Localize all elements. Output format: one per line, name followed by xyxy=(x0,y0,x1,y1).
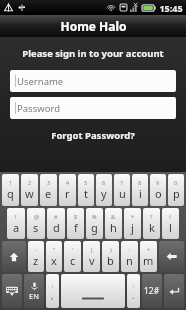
staticText: h xyxy=(110,220,117,235)
button[interactable]: # xyxy=(47,208,65,239)
button[interactable]: ? xyxy=(143,208,160,239)
button[interactable]: Username xyxy=(10,70,176,92)
button[interactable]: Keyboard settings xyxy=(2,274,22,308)
staticText: q xyxy=(7,186,14,201)
button[interactable]: Forgot Password? xyxy=(45,127,141,144)
button[interactable]: ! xyxy=(7,208,25,239)
staticText: * xyxy=(131,213,135,220)
button[interactable]: - xyxy=(28,241,44,272)
button[interactable]: Backspace xyxy=(159,241,184,272)
staticText: ( xyxy=(91,246,93,253)
button[interactable]: $ xyxy=(67,208,84,239)
staticText: y xyxy=(101,186,107,201)
button[interactable]: ) xyxy=(102,241,119,272)
button[interactable]: 8 xyxy=(132,174,148,206)
staticText: # xyxy=(54,213,58,220)
button[interactable]: Password xyxy=(10,97,176,119)
staticText: s xyxy=(33,220,39,235)
button[interactable]: Enter xyxy=(164,274,184,308)
staticText: a xyxy=(13,220,20,235)
staticText: x xyxy=(51,253,57,268)
button[interactable] xyxy=(61,274,125,308)
button[interactable]: ( xyxy=(83,241,100,272)
staticText: 5 xyxy=(84,179,88,186)
staticText: / xyxy=(169,213,172,220)
staticText: z xyxy=(33,253,39,268)
staticText: - xyxy=(35,246,37,253)
staticText: c xyxy=(70,253,76,268)
button[interactable]: " xyxy=(46,241,62,272)
staticText: Username xyxy=(17,75,64,88)
button[interactable]: ; xyxy=(46,274,59,308)
button[interactable]: + xyxy=(140,241,157,272)
staticText: i xyxy=(139,186,142,201)
staticText: 15:45 xyxy=(159,2,183,14)
staticText: w xyxy=(25,186,34,201)
button[interactable]: 4 xyxy=(59,174,76,206)
button[interactable]: Voice input EN xyxy=(24,274,44,308)
button[interactable]: 12# xyxy=(142,274,162,308)
staticText: t xyxy=(84,186,88,201)
staticText: 4 xyxy=(66,179,70,186)
button[interactable]: 2 xyxy=(21,174,38,206)
staticText: Forgot Password? xyxy=(51,129,135,142)
staticText: d xyxy=(53,220,60,235)
staticText: : xyxy=(129,246,131,253)
staticText: 12# xyxy=(144,285,160,297)
button[interactable]: 0 xyxy=(168,174,184,206)
staticText: ; xyxy=(52,282,54,289)
staticText: , xyxy=(51,289,54,301)
staticText: Home Halo xyxy=(60,18,127,34)
staticText: p xyxy=(173,186,180,201)
staticText: . xyxy=(132,289,135,301)
staticText: e xyxy=(45,186,52,201)
staticText: & xyxy=(111,213,116,220)
staticText: f xyxy=(74,220,78,235)
button[interactable]: / xyxy=(162,208,179,239)
staticText: " xyxy=(53,246,56,253)
button[interactable]: 1 xyxy=(2,174,19,206)
staticText: g xyxy=(91,220,98,235)
button[interactable]: @ xyxy=(27,208,45,239)
staticText: n xyxy=(126,253,133,268)
staticText: o xyxy=(155,186,162,201)
staticText: l xyxy=(169,220,172,235)
button[interactable]: 5 xyxy=(78,174,94,206)
button[interactable]: : xyxy=(127,274,140,308)
button[interactable]: % xyxy=(86,208,103,239)
staticText: 9 xyxy=(156,179,160,186)
staticText: ' xyxy=(72,246,74,253)
staticText: u xyxy=(119,186,126,201)
staticText: 6 xyxy=(102,179,106,186)
staticText: 1 xyxy=(9,179,13,186)
staticText: 3 xyxy=(47,179,51,186)
staticText: % xyxy=(92,213,97,220)
staticText: ? xyxy=(150,213,153,220)
button[interactable]: * xyxy=(124,208,141,239)
staticText: r xyxy=(65,186,70,201)
staticText: m xyxy=(143,253,154,268)
button[interactable]: 3 xyxy=(40,174,57,206)
button[interactable]: : xyxy=(121,241,138,272)
button[interactable]: 9 xyxy=(150,174,166,206)
staticText: EN xyxy=(29,291,39,301)
button[interactable]: 6 xyxy=(96,174,112,206)
button[interactable]: Shift xyxy=(2,241,26,272)
button[interactable]: ' xyxy=(64,241,81,272)
staticText: 8 xyxy=(138,179,142,186)
staticText: 7 xyxy=(120,179,124,186)
staticText: 2 xyxy=(28,179,32,186)
button[interactable]: & xyxy=(105,208,122,239)
staticText: @ xyxy=(34,213,39,220)
staticText: + xyxy=(147,246,151,253)
staticText: ) xyxy=(110,246,112,253)
staticText: b xyxy=(107,253,114,268)
staticText: 0 xyxy=(174,179,178,186)
staticText: k xyxy=(149,220,155,235)
staticText: $ xyxy=(74,213,78,220)
staticText: j xyxy=(131,220,134,235)
staticText: Password xyxy=(17,102,60,115)
staticText: : xyxy=(133,282,135,289)
button[interactable]: 7 xyxy=(114,174,130,206)
staticText: ! xyxy=(15,213,17,220)
